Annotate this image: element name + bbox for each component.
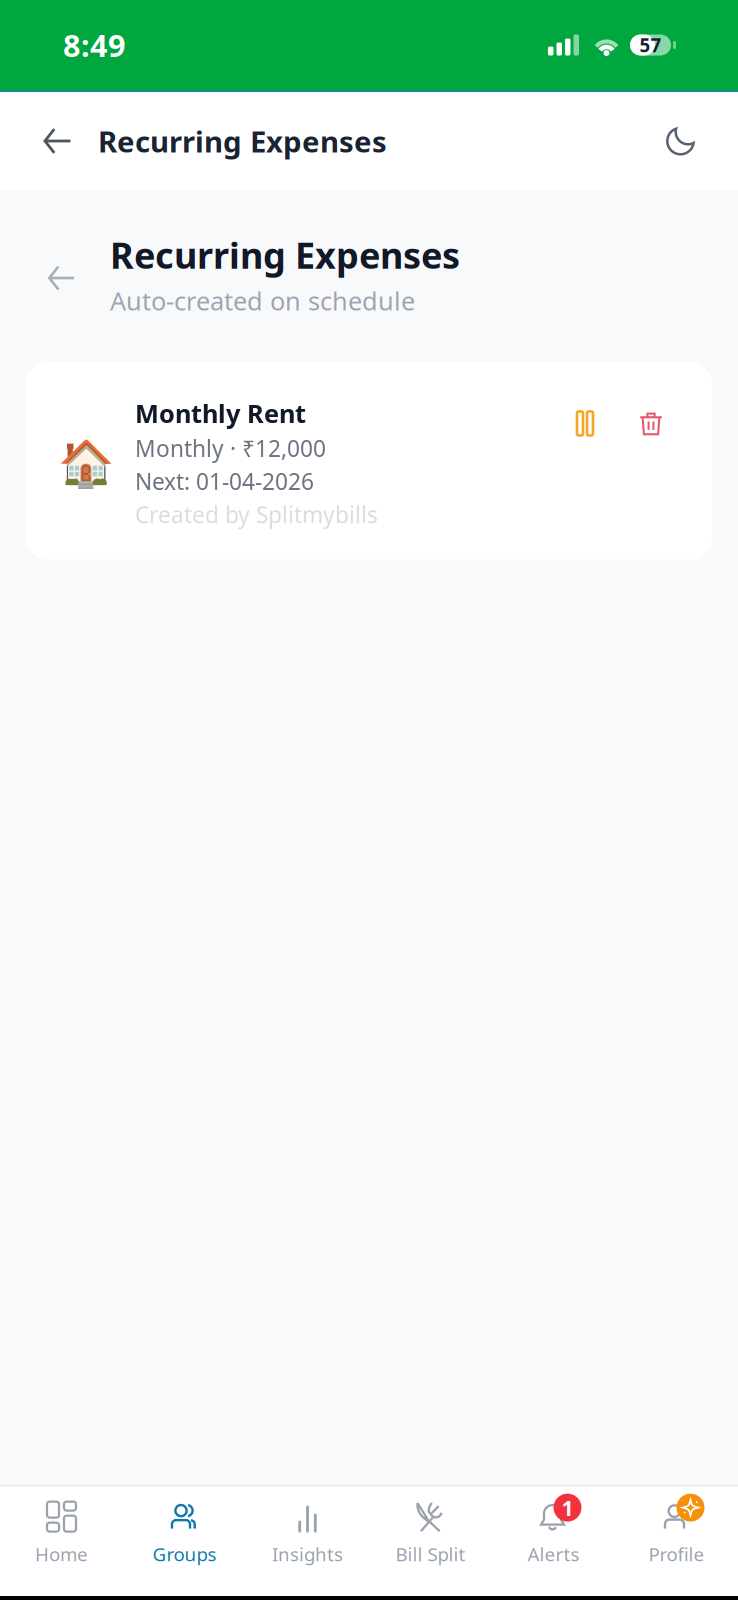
staticText: Monthly · ₹12,000 [135,433,326,463]
staticText: Bill Split [395,1542,465,1566]
staticText: Recurring Expenses [98,121,387,160]
staticText: 🏠 [58,438,114,490]
staticText: Profile [648,1542,704,1566]
staticText: Created by Splitmybills [135,499,378,529]
button[interactable]: Profile [615,1481,738,1600]
button[interactable]: Home [0,1481,123,1600]
button[interactable]: Back [37,254,85,302]
staticText: Auto-created on schedule [110,284,415,317]
staticText: Groups [152,1542,216,1566]
button[interactable]: Back [30,113,84,169]
button[interactable]: Pause [552,399,618,447]
staticText: Insights [272,1542,343,1566]
staticText: Recurring Expenses [110,231,460,279]
staticText: Next: 01-04-2026 [135,466,314,496]
button[interactable]: Groups [123,1481,246,1600]
staticText: 8:49 [63,25,126,65]
staticText: 1 [561,1493,573,1522]
button[interactable]: 1 [492,1481,615,1600]
button[interactable]: Insights [246,1481,369,1600]
button[interactable]: Bill Split [369,1481,492,1600]
button[interactable]: Delete [618,399,684,447]
staticText: Alerts [527,1542,579,1566]
button[interactable]: Toggle dark mode [654,113,708,169]
staticText: Home [35,1542,88,1566]
staticText: 57 [639,33,661,57]
staticText: Monthly Rent [135,396,306,430]
